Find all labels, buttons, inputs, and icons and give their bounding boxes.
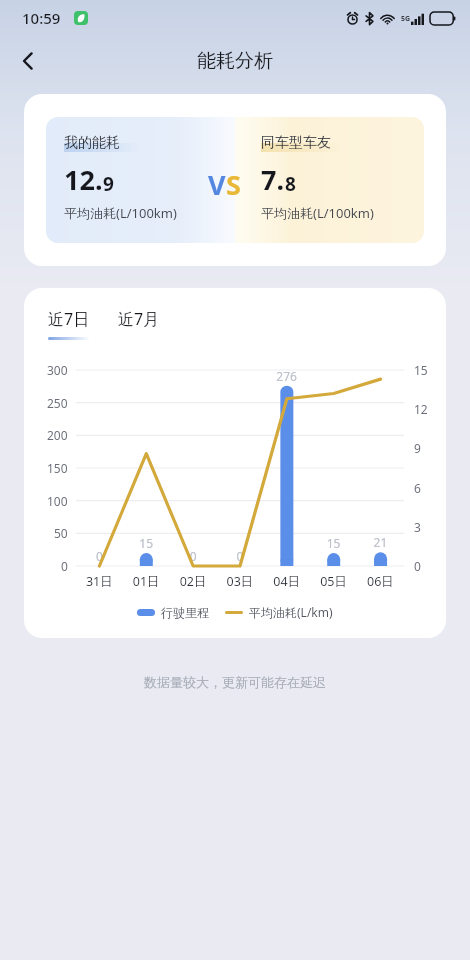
staticText: 平均油耗(L/km) xyxy=(249,604,333,620)
staticText: S xyxy=(226,166,241,203)
staticText: 数据量较大，更新可能存在延迟 xyxy=(0,674,470,690)
staticText: 5G xyxy=(401,14,411,24)
staticText: 平均油耗(L/100km) xyxy=(261,204,374,222)
staticText: 9 xyxy=(103,171,114,197)
staticText: V xyxy=(208,166,226,203)
button[interactable]: 我的能耗 xyxy=(46,117,235,243)
staticText: 近7月 xyxy=(118,308,160,330)
button[interactable]: Back xyxy=(6,39,50,83)
button[interactable]: 近7月 xyxy=(118,308,160,340)
button[interactable]: 近7日 xyxy=(48,308,90,340)
staticText: 能耗分析 xyxy=(197,49,273,73)
button[interactable]: 同车型车友 xyxy=(235,117,424,243)
staticText: 平均油耗(L/100km) xyxy=(64,204,177,222)
staticText: 同车型车友 xyxy=(261,134,331,152)
staticText: 10:59 xyxy=(22,8,61,28)
staticText: 我的能耗 xyxy=(64,134,120,152)
staticText: 8 xyxy=(285,171,296,197)
staticText: 行驶里程 xyxy=(161,605,209,620)
staticText: 近7日 xyxy=(48,308,90,330)
staticText: 7. xyxy=(261,161,285,198)
staticText: 12. xyxy=(64,161,103,198)
